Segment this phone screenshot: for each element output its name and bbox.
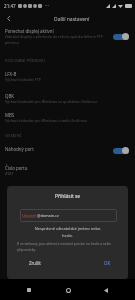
button[interactable]: Back xyxy=(0,11,16,26)
button[interactable]: Náhodný port xyxy=(0,143,135,157)
staticText: OK xyxy=(104,260,111,266)
staticText: Výchozí kódování pro Windows s hadící čí… xyxy=(5,118,88,123)
staticText: Výchozí kódování FTP xyxy=(5,77,41,82)
button[interactable]: Zrušit xyxy=(25,257,45,269)
button[interactable]: OK xyxy=(100,257,115,269)
staticText: Nesprávné uživatelské jméno nebo heslo. xyxy=(29,226,106,238)
staticText: K ve smlouvy jsou aktivní a nastavit pro… xyxy=(17,241,113,252)
staticText: Další nastavení xyxy=(54,16,90,23)
button[interactable]: MBS xyxy=(0,112,135,127)
staticText: QBK xyxy=(5,93,15,99)
button[interactable]: Ponechat displej aktivní xyxy=(0,27,135,48)
staticText: KÓDOVÁNÍ PŘENOSU xyxy=(5,58,46,63)
button[interactable]: Toggle xyxy=(112,31,130,42)
staticText: Náhodný port xyxy=(5,146,34,152)
staticText: Přihlásit se xyxy=(55,193,81,200)
staticText: Zrušit xyxy=(29,260,41,266)
button[interactable]: Back xyxy=(96,280,116,300)
button[interactable]: QBK xyxy=(0,93,135,108)
staticText: Uzivatel xyxy=(22,213,37,218)
staticText: Zabránit displeji v přechodu do režimu s… xyxy=(5,34,108,45)
staticText: 2121 xyxy=(5,171,14,176)
button[interactable]: Uzivatel xyxy=(20,209,117,222)
button[interactable]: Home xyxy=(58,280,78,300)
staticText: 21:47 xyxy=(4,3,16,9)
button[interactable]: Toggle xyxy=(112,145,130,156)
staticText: Číslo portu xyxy=(5,165,28,171)
staticText: LFX-B xyxy=(5,71,17,77)
staticText: ··· xyxy=(45,2,50,9)
button[interactable]: LFX-B xyxy=(0,71,135,86)
staticText: Ponechat displej aktivní xyxy=(5,28,54,34)
staticText: MBS xyxy=(5,112,15,118)
button[interactable]: Číslo portu xyxy=(0,165,135,180)
staticText: OSTATNÍ xyxy=(5,133,22,138)
staticText: Výchozí kódování pro Windows se spuštěno… xyxy=(5,99,97,104)
staticText: @domain.cz xyxy=(37,213,59,218)
button[interactable]: Recents xyxy=(19,280,39,300)
